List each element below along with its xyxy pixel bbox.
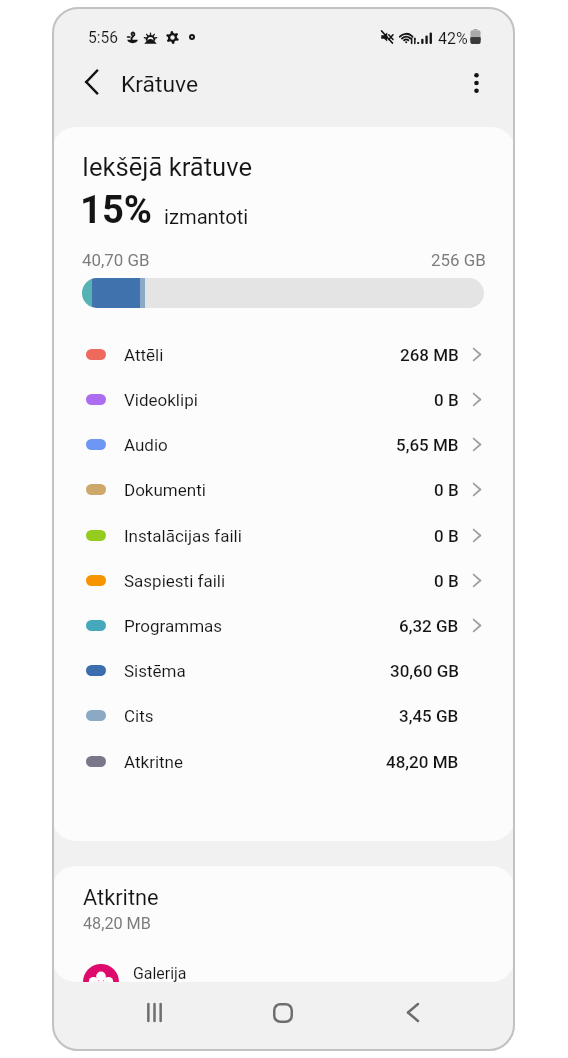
staticText: Sistēma (124, 661, 186, 681)
staticText: 0 B (434, 390, 459, 410)
button[interactable]: Dokumenti (52, 467, 515, 512)
button[interactable]: Cits (52, 693, 515, 738)
staticText: Krātuve (121, 71, 198, 98)
staticText: 40,70 GB (82, 250, 150, 270)
staticText: 0 B (434, 480, 459, 500)
staticText: 42% (438, 29, 468, 48)
staticText: Atkritne (83, 885, 159, 911)
button[interactable]: Recents (126, 984, 182, 1040)
staticText: 30,60 GB (390, 661, 459, 681)
staticText: Saspiesti faili (124, 571, 226, 591)
button[interactable]: Atkritne (52, 739, 515, 784)
staticText: 256 GB (431, 250, 486, 270)
button[interactable]: Instalācijas faili (52, 513, 515, 558)
staticText: 0 B (434, 571, 459, 591)
staticText: Dokumenti (124, 480, 206, 500)
staticText: 6,32 GB (399, 616, 459, 636)
button[interactable]: Saspiesti faili (52, 558, 515, 603)
button[interactable]: Back (385, 984, 441, 1040)
button[interactable]: Audio (52, 422, 515, 467)
staticText: 5:56 (88, 29, 119, 47)
button[interactable]: Home (255, 985, 311, 1041)
staticText: 3,45 GB (399, 706, 459, 726)
button[interactable]: More options (450, 57, 502, 109)
staticText: 0 B (434, 526, 459, 546)
staticText: izmantoti (164, 205, 249, 229)
staticText: Atkritne (124, 752, 183, 772)
staticText: Cits (124, 706, 154, 726)
staticText: Audio (124, 435, 168, 455)
button[interactable]: Attēli (52, 332, 515, 377)
staticText: 5,65 MB (396, 435, 459, 455)
button[interactable]: Videoklipi (52, 377, 515, 422)
button[interactable]: Back (62, 53, 120, 111)
staticText: 48,20 MB (83, 914, 151, 933)
staticText: 15% (80, 188, 153, 233)
button[interactable]: Programmas (52, 603, 515, 648)
staticText: Instalācijas faili (124, 526, 242, 546)
staticText: Programmas (124, 616, 223, 636)
staticText: 268 MB (400, 345, 459, 365)
staticText: 48,20 MB (386, 752, 459, 772)
staticText: Galerija (133, 964, 187, 982)
staticText: Attēli (124, 345, 164, 365)
staticText: Iekšējā krātuve (82, 152, 253, 182)
staticText: Videoklipi (124, 390, 198, 410)
button[interactable]: Sistēma (52, 648, 515, 693)
